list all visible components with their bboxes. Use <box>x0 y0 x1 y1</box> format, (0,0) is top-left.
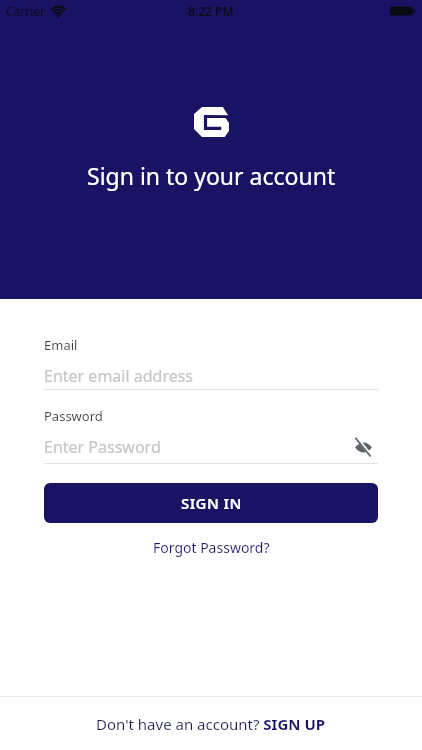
staticText: 8:22 PM <box>188 3 234 19</box>
staticText: Password <box>44 407 103 425</box>
staticText: Email <box>44 336 78 354</box>
button[interactable]: Enter Password <box>44 436 378 458</box>
staticText: Forgot Password? <box>153 538 270 557</box>
button[interactable]: Enter email address <box>44 365 378 387</box>
button[interactable]: Forgot Password? <box>153 538 270 557</box>
button[interactable]: SIGN IN <box>44 483 378 523</box>
staticText: Don't have an account? SIGN UP <box>96 714 326 734</box>
staticText: SIGN IN <box>181 493 242 513</box>
button[interactable]: Don't have an account? SIGN UP <box>0 697 422 750</box>
staticText: Enter email address <box>44 365 194 387</box>
button[interactable] <box>355 440 372 455</box>
staticText: Enter Password <box>44 436 161 458</box>
staticText: Sign in to your account <box>87 160 336 191</box>
staticText: Carrier <box>6 3 46 19</box>
